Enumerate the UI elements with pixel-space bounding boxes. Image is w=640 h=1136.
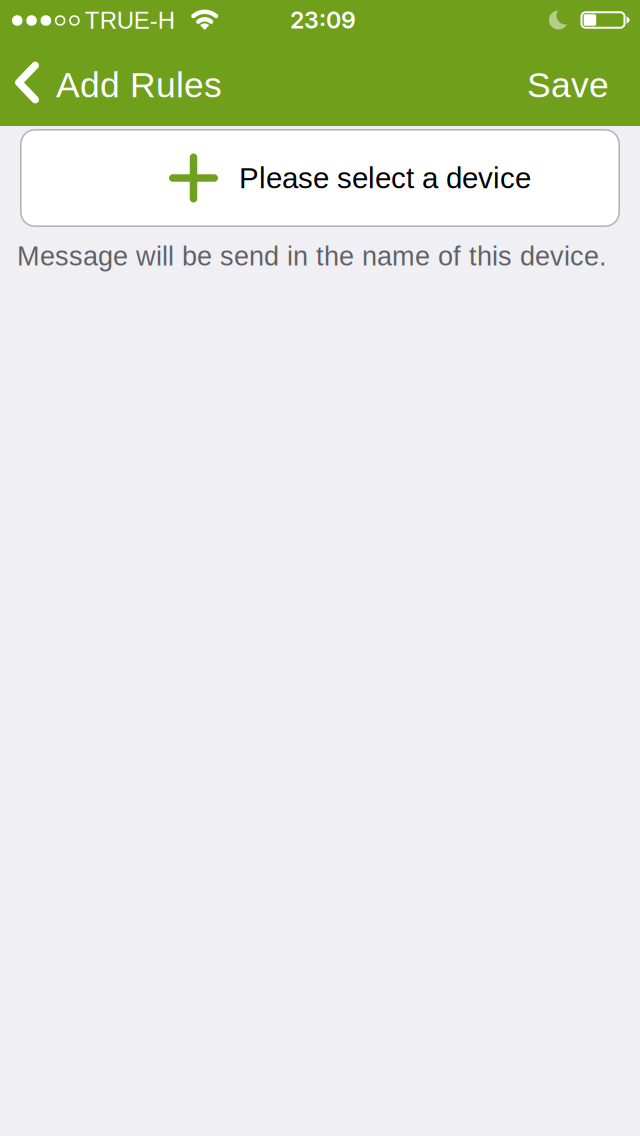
staticText: 23:09 — [290, 6, 356, 34]
staticText: Add Rules — [56, 65, 222, 105]
button[interactable]: Save — [527, 65, 640, 105]
staticText: Please select a device — [239, 161, 531, 194]
staticText: TRUE-H — [85, 7, 175, 34]
staticText: Message will be send in the name of this… — [17, 241, 607, 271]
button[interactable]: Please select a device — [20, 129, 620, 227]
staticText: Save — [527, 65, 609, 105]
button[interactable]: Back — [0, 63, 222, 106]
